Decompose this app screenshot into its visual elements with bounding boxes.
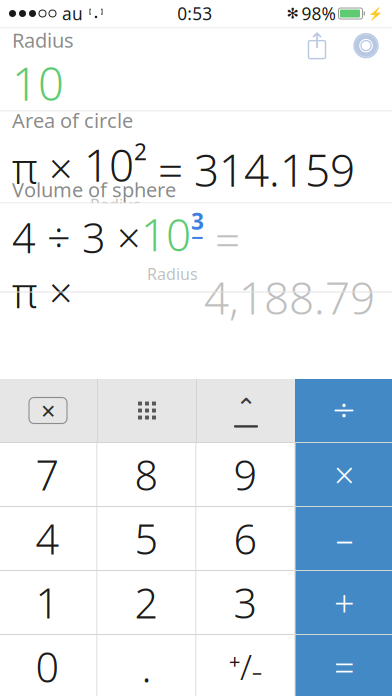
button[interactable]: 8 <box>97 443 195 506</box>
staticText: 10 <box>141 205 191 263</box>
staticText: 3 <box>191 206 204 236</box>
staticText: ⚡ <box>368 7 383 20</box>
button[interactable]: 7 <box>0 443 96 506</box>
staticText: + <box>334 579 355 626</box>
staticText: = 314.159 <box>147 140 355 199</box>
staticText: 3 <box>233 575 257 630</box>
button[interactable]: Collapse keyboard <box>197 379 295 442</box>
button[interactable]: Divide <box>295 379 392 442</box>
staticText: Radius <box>147 263 198 284</box>
staticText: 9 <box>233 447 257 502</box>
button[interactable]: Settings <box>352 31 380 61</box>
button[interactable]: Multiply <box>295 443 392 506</box>
staticText: = <box>334 643 355 690</box>
button[interactable]: 3 <box>196 571 294 634</box>
staticText: 10 <box>84 135 134 194</box>
button[interactable]: Volume of sphere <box>0 203 392 291</box>
staticText: ↑ <box>308 28 326 53</box>
button[interactable]: Add <box>295 571 392 634</box>
staticText: 6 <box>233 511 257 566</box>
staticText: = 4,188.79 <box>204 210 375 327</box>
staticText: – <box>252 659 262 685</box>
staticText: × <box>334 451 355 498</box>
staticText: × <box>41 394 55 427</box>
staticText: Radius <box>90 194 141 215</box>
button[interactable]: Share <box>304 31 330 61</box>
staticText: Radius <box>12 27 74 53</box>
staticText: 1 <box>35 575 59 630</box>
button[interactable]: 4 <box>0 507 96 570</box>
staticText: 8 <box>134 447 158 502</box>
staticText: 4 ÷ 3 × π × <box>12 210 141 320</box>
staticText: . <box>141 639 151 694</box>
button[interactable]: Keypad options <box>98 379 196 442</box>
staticText: 10 <box>12 53 64 113</box>
staticText: 0:53 <box>177 2 212 25</box>
staticText: ✻ <box>286 5 298 22</box>
button[interactable]: 1 <box>0 571 96 634</box>
staticText: 2 <box>134 136 147 166</box>
button[interactable]: 0 <box>0 635 96 696</box>
button[interactable]: Radius <box>0 28 392 110</box>
staticText: au <box>62 2 83 25</box>
staticText: – <box>335 515 353 562</box>
button[interactable]: Delete <box>0 379 97 442</box>
staticText: 0 <box>35 639 59 694</box>
staticText: Volume of sphere <box>12 176 176 203</box>
button[interactable]: 5 <box>97 507 195 570</box>
staticText: 7 <box>35 447 59 502</box>
button[interactable]: 6 <box>196 507 294 570</box>
staticText: 5 <box>134 511 158 566</box>
staticText: ⌃ <box>235 393 256 422</box>
button[interactable]: Subtract <box>295 507 392 570</box>
staticText: 4 <box>35 511 59 566</box>
staticText: 98% <box>301 2 335 25</box>
button[interactable]: Area of circle <box>0 111 392 202</box>
button[interactable]: 2 <box>97 571 195 634</box>
staticText: Area of circle <box>12 107 133 133</box>
button[interactable]: . <box>97 635 195 696</box>
staticText: π × <box>12 140 84 195</box>
button[interactable]: Plus or minus <box>196 635 294 696</box>
button[interactable]: Equals <box>295 635 392 696</box>
button[interactable]: 9 <box>196 443 294 506</box>
staticText: + <box>229 648 240 674</box>
staticText: / <box>240 643 252 689</box>
staticText: 2 <box>134 575 158 630</box>
